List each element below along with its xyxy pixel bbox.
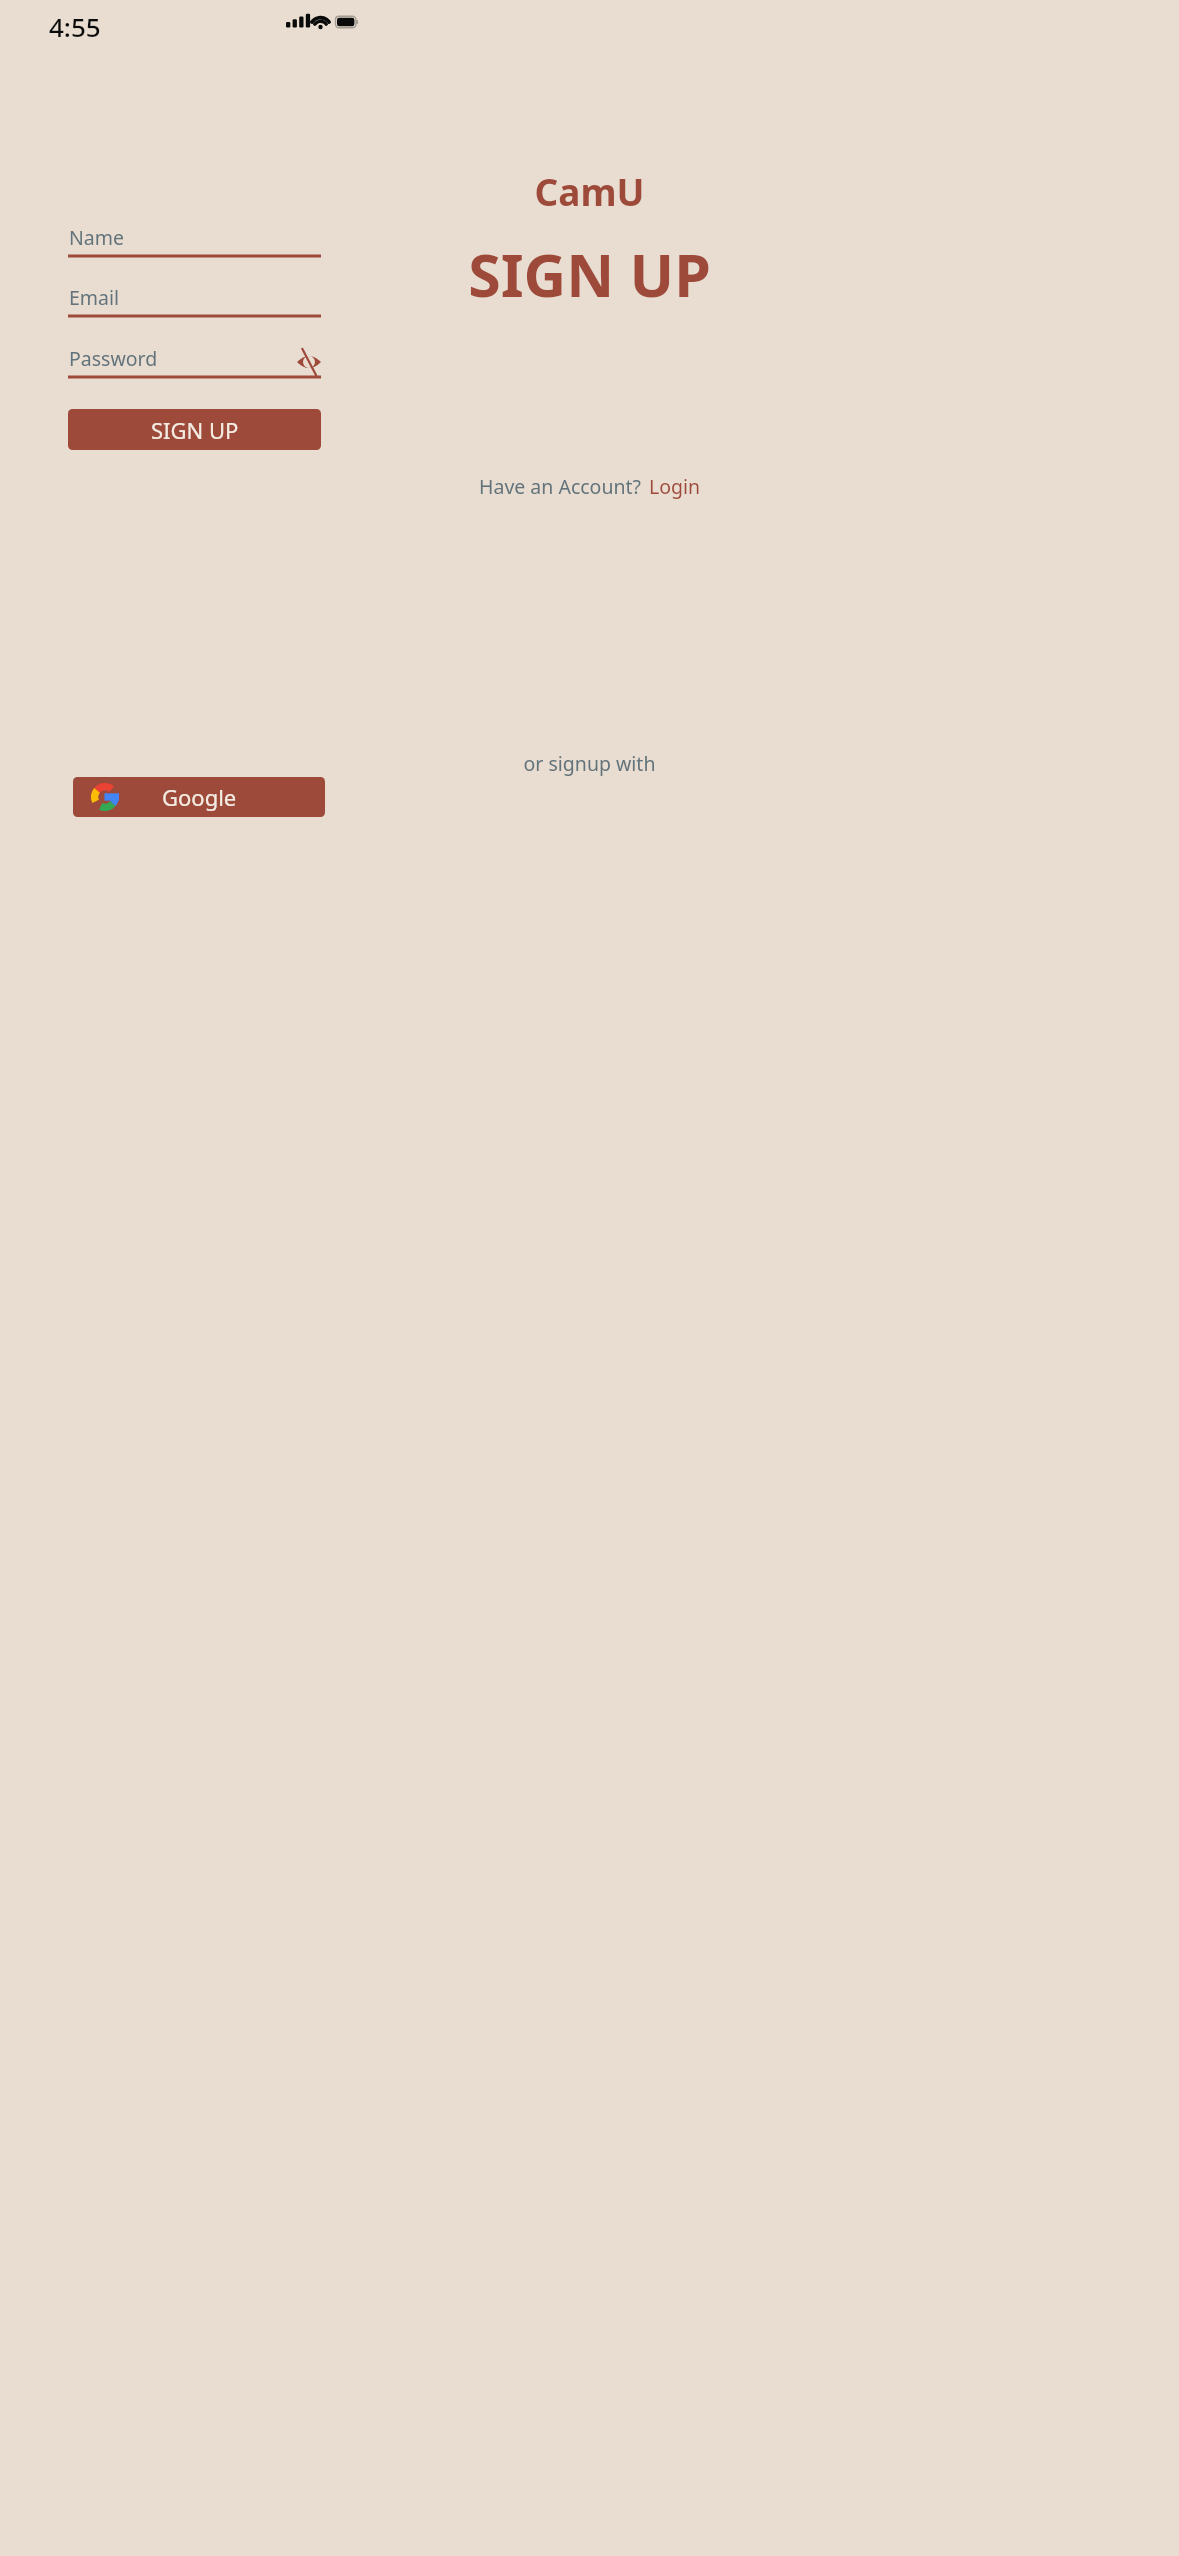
button[interactable]: Email [68,277,321,317]
staticText: Login [649,473,701,500]
button[interactable]: Name [68,217,321,257]
staticText: Have an Account? [479,473,642,500]
button[interactable]: Login [649,473,701,500]
button[interactable]: Google [73,777,325,817]
staticText: SIGN UP [151,415,239,445]
staticText: SIGN UP [0,234,1179,314]
staticText: Google [162,782,237,812]
button[interactable]: SIGN UP [68,409,321,450]
staticText: or signup with [0,750,1179,777]
button[interactable]: Password [68,338,321,378]
button[interactable]: Show password [297,352,321,372]
staticText: 4:55 [49,9,101,44]
staticText: Password [69,345,158,372]
staticText: Email [69,284,120,311]
staticText: CamU [0,166,1179,216]
staticText: Name [69,224,124,251]
